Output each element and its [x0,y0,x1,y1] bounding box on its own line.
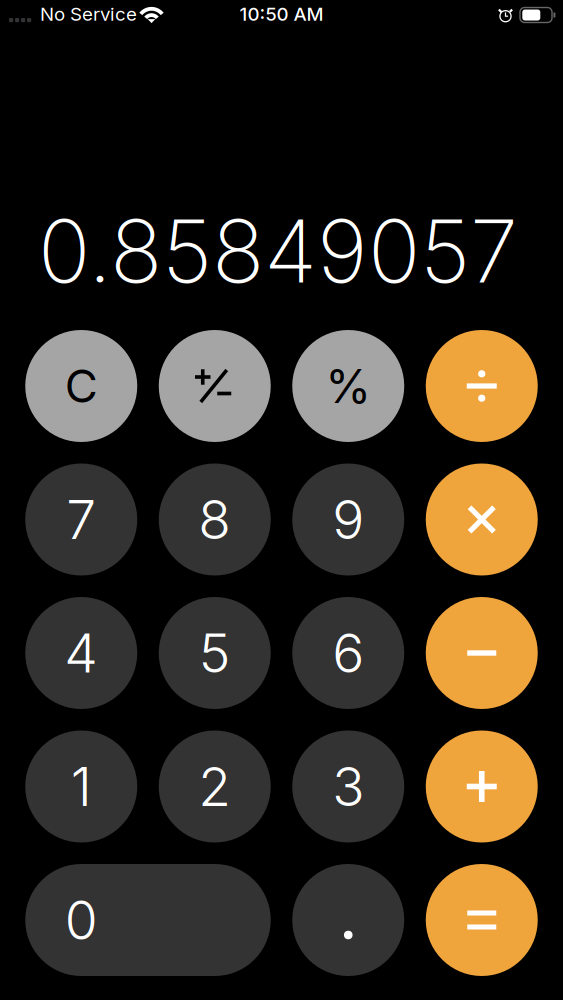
staticText: 6 [332,621,364,685]
button[interactable]: C [25,330,137,442]
button[interactable] [426,730,538,842]
button[interactable] [426,597,538,709]
staticText: 1 [71,754,92,819]
staticText: 3 [332,754,364,819]
button[interactable]: % [292,330,404,442]
staticText: % [325,358,371,414]
button[interactable]: 3 [292,730,404,842]
button[interactable]: 9 [292,463,404,575]
staticText: C [65,359,98,413]
staticText: 10:50 AM [239,3,323,25]
staticText: 0 [65,888,98,952]
staticText: 5 [199,621,231,685]
button[interactable] [426,330,538,442]
button[interactable]: 6 [292,597,404,709]
staticText: 0.85849057 [38,199,518,303]
staticText: No Service [40,3,137,25]
button[interactable]: 2 [159,730,271,842]
staticText: 4 [64,621,98,685]
button[interactable] [426,864,538,976]
staticText: 7 [66,487,96,552]
button[interactable]: 4 [25,597,137,709]
button[interactable]: 7 [25,463,137,575]
button[interactable] [292,864,404,976]
button[interactable] [159,330,271,442]
button[interactable]: 0 [25,864,271,976]
staticText: 8 [198,487,231,552]
button[interactable]: 8 [159,463,271,575]
staticText: 2 [198,754,231,819]
button[interactable]: 1 [25,730,137,842]
button[interactable]: 5 [159,597,271,709]
staticText: 9 [332,487,364,552]
button[interactable] [426,463,538,575]
